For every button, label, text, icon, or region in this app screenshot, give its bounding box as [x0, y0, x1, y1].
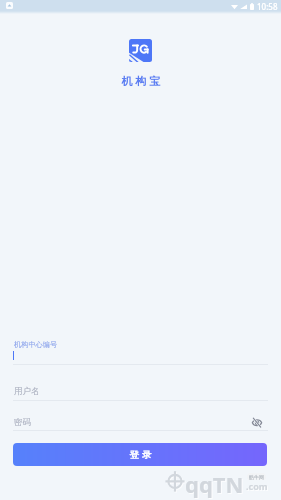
- button[interactable]: 用户名: [0, 382, 281, 401]
- staticText: 用户名: [14, 386, 40, 397]
- staticText: 密码: [14, 417, 31, 428]
- button[interactable]: 登录: [13, 443, 267, 466]
- staticText: 机构宝: [120, 74, 162, 88]
- staticText: qqTN: [185, 469, 244, 499]
- button[interactable]: 密码: [0, 413, 281, 431]
- staticText: 酷牛网: [249, 474, 264, 480]
- button[interactable]: 机构中心编号: [0, 336, 281, 365]
- staticText: qqTN: [186, 470, 245, 500]
- staticText: .com: [247, 481, 269, 493]
- staticText: 机构中心编号: [14, 340, 58, 349]
- staticText: .com: [246, 480, 268, 492]
- staticText: 登录: [128, 449, 153, 461]
- staticText: 10:58: [257, 1, 278, 12]
- button[interactable]: Show password: [250, 415, 264, 429]
